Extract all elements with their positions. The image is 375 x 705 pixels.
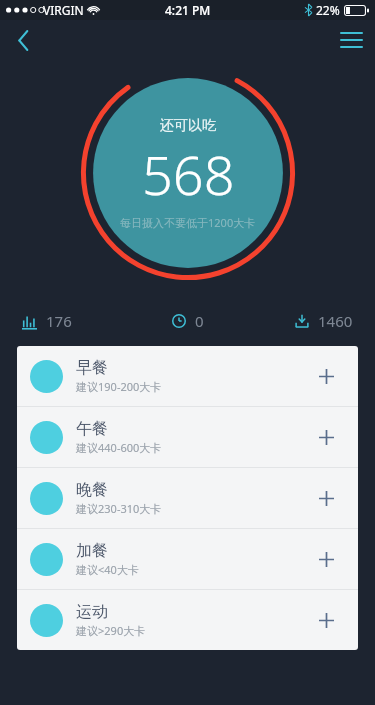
staticText: 加餐 bbox=[76, 541, 108, 561]
staticText: 早餐 bbox=[76, 358, 108, 378]
staticText: 建议190-200大卡 bbox=[76, 379, 162, 394]
staticText: VIRGIN bbox=[43, 2, 84, 18]
button[interactable]: Add 加餐 bbox=[307, 540, 345, 578]
button[interactable]: Add 晚餐 bbox=[307, 479, 345, 517]
staticText: 晚餐 bbox=[76, 480, 108, 500]
staticText: 运动 bbox=[76, 602, 108, 622]
staticText: 4:21 PM bbox=[165, 2, 211, 18]
staticText: 建议440-600大卡 bbox=[76, 440, 162, 455]
staticText: 22% bbox=[316, 2, 340, 18]
button[interactable]: Add 早餐 bbox=[307, 357, 345, 395]
button[interactable]: Back bbox=[0, 20, 46, 60]
staticText: 每日摄入不要低于1200大卡 bbox=[120, 215, 256, 230]
button[interactable]: 176 bbox=[22, 308, 125, 334]
staticText: 176 bbox=[46, 311, 72, 331]
staticText: 568 bbox=[142, 137, 235, 211]
button[interactable]: 午餐 bbox=[17, 407, 358, 467]
button[interactable]: 1460 bbox=[250, 308, 353, 334]
staticText: 还可以吃 bbox=[160, 117, 216, 135]
button[interactable]: 加餐 bbox=[17, 529, 358, 589]
button[interactable]: Menu bbox=[327, 20, 375, 60]
button[interactable]: 早餐 bbox=[17, 346, 358, 406]
staticText: 建议>290大卡 bbox=[76, 623, 146, 638]
staticText: 午餐 bbox=[76, 419, 108, 439]
staticText: 建议230-310大卡 bbox=[76, 501, 162, 516]
staticText: 建议<40大卡 bbox=[76, 562, 139, 577]
staticText: 1460 bbox=[318, 311, 353, 331]
button[interactable]: Add 运动 bbox=[307, 601, 345, 639]
button[interactable]: 运动 bbox=[17, 590, 358, 650]
button[interactable]: Add 午餐 bbox=[307, 418, 345, 456]
button[interactable]: 晚餐 bbox=[17, 468, 358, 528]
staticText: 0 bbox=[195, 311, 204, 331]
button[interactable]: 0 bbox=[125, 308, 250, 334]
